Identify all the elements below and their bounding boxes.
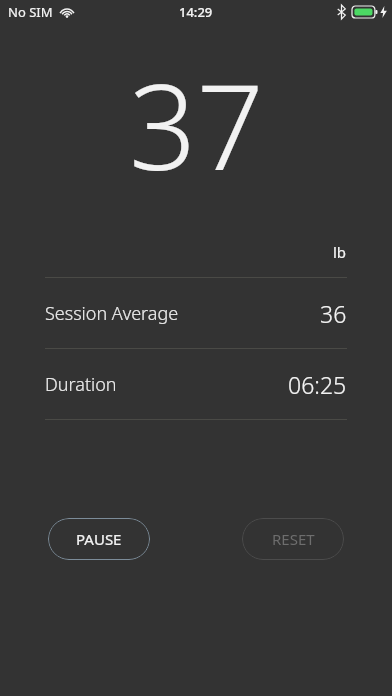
- button[interactable]: PAUSE: [48, 518, 150, 560]
- button[interactable]: Session Average: [0, 278, 392, 348]
- other: Wi-Fi signal: [59, 6, 75, 18]
- staticText: 06:25: [288, 369, 347, 400]
- staticText: 37: [129, 44, 264, 205]
- button[interactable]: RESET: [242, 518, 344, 560]
- staticText: No SIM: [8, 3, 53, 21]
- staticText: RESET: [272, 529, 315, 549]
- other: Bluetooth: [337, 5, 346, 19]
- staticText: Session Average: [45, 301, 320, 326]
- staticText: 36: [320, 298, 347, 329]
- button[interactable]: Duration: [0, 349, 392, 419]
- staticText: 14:29: [179, 3, 213, 21]
- staticText: PAUSE: [76, 529, 122, 549]
- staticText: Duration: [45, 372, 288, 397]
- staticText: lb: [333, 242, 347, 262]
